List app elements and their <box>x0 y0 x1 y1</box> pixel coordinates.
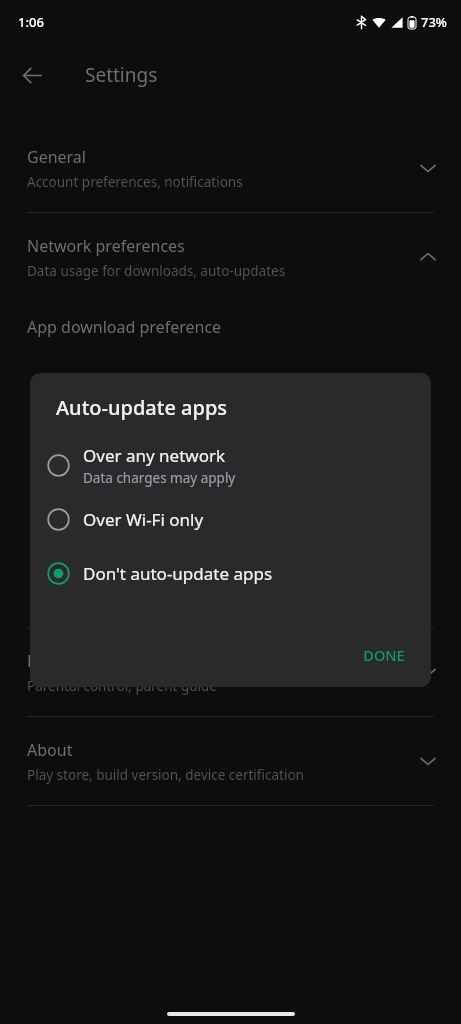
staticText: Parental control, parent guide <box>27 677 217 695</box>
button[interactable]: DONE <box>351 637 417 673</box>
button[interactable]: Over any network <box>30 436 431 494</box>
staticText: Over Wi-Fi only <box>83 508 204 531</box>
staticText: Account preferences, notifications <box>27 173 243 191</box>
button[interactable]: Don't auto-update apps <box>30 548 431 598</box>
staticText: Over any network <box>83 444 226 467</box>
staticText: App download preference <box>27 316 222 338</box>
staticText: Auto-update apps <box>56 394 228 421</box>
staticText: General <box>27 146 86 168</box>
button[interactable]: Network preferences <box>0 213 461 301</box>
staticText: About <box>27 739 73 761</box>
staticText: Network preferences <box>27 235 185 257</box>
staticText: Don't auto-update apps <box>83 562 273 585</box>
staticText: Play store, build version, device certif… <box>27 766 304 784</box>
button[interactable]: Over Wi-Fi only <box>30 494 431 544</box>
staticText: Data charges may apply <box>83 469 236 487</box>
staticText: DONE <box>363 645 405 665</box>
button[interactable]: General <box>0 124 461 212</box>
staticText: 73% <box>421 13 447 31</box>
button[interactable]: Back <box>12 55 52 95</box>
staticText: Data usage for downloads, auto-updates <box>27 262 286 280</box>
button[interactable]: Family <box>0 628 461 716</box>
staticText: Settings <box>85 62 158 88</box>
button[interactable]: About <box>0 717 461 805</box>
staticText: 1:06 <box>18 13 44 31</box>
staticText: Family <box>27 650 76 672</box>
